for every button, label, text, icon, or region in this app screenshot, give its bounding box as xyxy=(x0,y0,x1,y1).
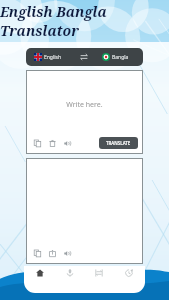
button[interactable]: TRANSLATE xyxy=(99,137,138,149)
button[interactable]: Share xyxy=(47,248,57,258)
staticText: English Bangla Translator xyxy=(0,2,169,40)
staticText: English xyxy=(44,54,62,61)
button[interactable]: Copy xyxy=(32,248,42,258)
button[interactable]: English xyxy=(26,48,74,66)
button[interactable]: Speak xyxy=(62,248,72,258)
button[interactable]: Speak xyxy=(62,138,72,148)
button[interactable]: Home xyxy=(27,266,53,293)
button[interactable]: Bangla xyxy=(94,48,143,66)
button[interactable]: Copy xyxy=(32,138,42,148)
staticText: TRANSLATE xyxy=(106,140,131,146)
button[interactable]: Swap languages xyxy=(74,48,94,66)
button[interactable]: Delete xyxy=(47,138,57,148)
staticText: Write here. xyxy=(66,100,103,110)
staticText: Bangla xyxy=(112,54,129,61)
button[interactable]: Conversation xyxy=(86,266,112,293)
button[interactable]: Voice translate xyxy=(57,266,83,293)
button[interactable]: History xyxy=(116,266,142,293)
